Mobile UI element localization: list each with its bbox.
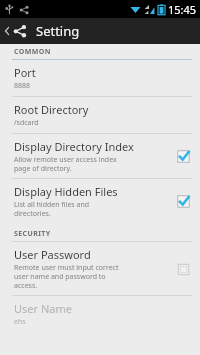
staticText: User Name bbox=[14, 301, 72, 316]
button[interactable]: Checked bbox=[176, 194, 190, 208]
button[interactable]: User Name bbox=[0, 296, 200, 332]
staticText: SECURITY bbox=[14, 229, 51, 239]
button[interactable]: User Password bbox=[0, 242, 200, 295]
staticText: 15:45 bbox=[168, 2, 197, 17]
staticText: Display Hidden Files bbox=[14, 184, 118, 199]
staticText: ehs bbox=[14, 317, 26, 327]
button[interactable]: Display Hidden Files bbox=[0, 179, 200, 223]
staticText: Port bbox=[14, 65, 36, 80]
button[interactable]: Port bbox=[0, 60, 200, 96]
staticText: User Password bbox=[14, 247, 91, 262]
button[interactable]: Root Directory bbox=[0, 97, 200, 133]
staticText: Display Directory Index bbox=[14, 139, 134, 154]
button[interactable]: Checked bbox=[176, 149, 190, 163]
staticText: List all hidden files and directories. bbox=[14, 200, 90, 218]
staticText: COMMON bbox=[14, 47, 51, 57]
button[interactable]: Navigate up bbox=[0, 21, 30, 41]
staticText: 8888 bbox=[14, 81, 31, 91]
button[interactable]: Unchecked bbox=[176, 262, 190, 276]
button[interactable]: Display Directory Index bbox=[0, 134, 200, 178]
staticText: Setting bbox=[36, 22, 80, 40]
staticText: Allow remote user access index page of d… bbox=[14, 155, 117, 173]
staticText: /sdcard bbox=[14, 118, 39, 128]
staticText: Remote user must input correct user name… bbox=[14, 263, 119, 290]
staticText: Root Directory bbox=[14, 102, 89, 117]
